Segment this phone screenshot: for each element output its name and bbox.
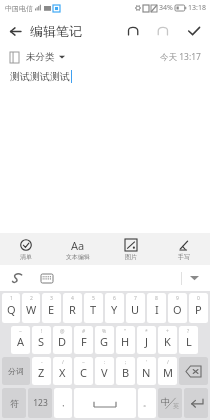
button[interactable]: 未分类 — [10, 51, 65, 63]
button[interactable]: 图片 — [104, 233, 157, 265]
button[interactable]: 分词 — [2, 357, 30, 385]
button[interactable]: 6 — [105, 293, 124, 323]
button[interactable]: 3 — [42, 293, 61, 323]
staticText: S — [38, 334, 45, 349]
staticText: 。 — [143, 398, 151, 408]
button[interactable]: 清单 — [0, 233, 52, 265]
staticText: Q — [7, 302, 16, 317]
button[interactable]: Switch language — [158, 388, 182, 418]
button[interactable]: Redo — [148, 16, 178, 46]
staticText: 1 — [10, 295, 13, 302]
staticText: % — [102, 328, 107, 335]
button[interactable]: Enter — [184, 388, 208, 418]
staticText: + — [166, 328, 169, 335]
button[interactable]: 4 — [63, 293, 82, 323]
button[interactable]: + — [158, 326, 177, 354]
staticText: 编辑笔记 — [30, 23, 82, 39]
button[interactable]: 123 — [28, 388, 52, 418]
staticText: 9 — [176, 295, 179, 302]
button[interactable]: ; — [116, 357, 135, 385]
button[interactable]: / — [158, 357, 177, 385]
staticText: U — [131, 302, 140, 317]
staticText: ? — [187, 328, 190, 335]
button[interactable]: / — [53, 357, 72, 385]
button[interactable]: # — [74, 326, 93, 354]
staticText: ; — [125, 359, 127, 366]
button[interactable]: Keyboard — [38, 269, 56, 287]
button[interactable]: Space — [74, 388, 136, 418]
button[interactable]: - — [32, 357, 51, 385]
staticText: @ — [60, 328, 65, 335]
staticText: X — [59, 365, 66, 380]
staticText: 7 — [134, 295, 137, 302]
staticText: 123 — [33, 397, 48, 409]
staticText: G — [100, 334, 109, 349]
staticText: D — [58, 334, 67, 349]
staticText: 中 — [161, 396, 170, 407]
staticText: " — [124, 328, 127, 335]
staticText: ， — [59, 398, 67, 408]
staticText: I — [155, 302, 159, 317]
button[interactable]: * — [137, 326, 156, 354]
staticText: 手写 — [178, 253, 190, 261]
staticText: Z — [38, 365, 45, 380]
button[interactable]: % — [95, 326, 114, 354]
staticText: W — [26, 302, 37, 317]
staticText: 4 — [71, 295, 74, 302]
staticText: B — [122, 365, 130, 380]
staticText: 13:18 — [188, 3, 206, 13]
staticText: 图片 — [125, 253, 137, 261]
staticText: V — [101, 365, 108, 380]
button[interactable]: Done — [178, 16, 210, 46]
button[interactable]: 5 — [84, 293, 103, 323]
staticText: 5 — [92, 295, 95, 302]
staticText: 8 — [155, 295, 158, 302]
button[interactable]: 8 — [147, 293, 166, 323]
staticText: 分词 — [8, 366, 24, 376]
button[interactable]: Backspace — [179, 357, 208, 385]
button[interactable]: Aa — [52, 233, 104, 265]
button[interactable]: ' — [137, 357, 156, 385]
button[interactable]: 9 — [168, 293, 187, 323]
staticText: 文本编辑 — [66, 253, 90, 261]
button[interactable]: 0 — [189, 293, 208, 323]
staticText: / — [167, 359, 169, 366]
staticText: A — [17, 334, 25, 349]
staticText: J — [145, 334, 149, 349]
staticText: : — [104, 359, 106, 366]
staticText: 3 — [50, 295, 53, 302]
button[interactable]: 7 — [126, 293, 145, 323]
staticText: O — [173, 302, 182, 317]
staticText: 6 — [113, 295, 116, 302]
staticText: F — [81, 334, 87, 349]
button[interactable]: ~ — [11, 326, 30, 354]
staticText: ~ — [82, 359, 85, 366]
staticText: K — [164, 334, 171, 349]
staticText: # — [82, 328, 86, 335]
button[interactable]: 符 — [2, 388, 26, 418]
button[interactable]: 1 — [2, 293, 20, 323]
staticText: / — [62, 359, 64, 366]
staticText: 中国电信 — [5, 4, 33, 13]
staticText: E — [48, 302, 55, 317]
staticText: C — [80, 365, 87, 380]
button[interactable]: Undo — [118, 16, 148, 46]
button[interactable]: ? — [179, 326, 198, 354]
staticText: N — [142, 365, 151, 380]
button[interactable]: Sogou — [8, 269, 26, 287]
staticText: 英 — [173, 402, 179, 410]
button[interactable]: 2 — [22, 293, 40, 323]
button[interactable]: @ — [53, 326, 72, 354]
button[interactable]: ! — [32, 326, 51, 354]
staticText: 0 — [197, 295, 200, 302]
button[interactable]: Back — [0, 16, 30, 46]
button[interactable]: 。 — [138, 388, 156, 418]
button[interactable]: 手写 — [157, 233, 210, 265]
button[interactable]: ~ — [74, 357, 93, 385]
button[interactable]: ， — [54, 388, 72, 418]
staticText: 测试测试测试 — [10, 70, 70, 83]
button[interactable]: " — [116, 326, 135, 354]
button[interactable]: : — [95, 357, 114, 385]
staticText: 2 — [30, 295, 33, 302]
button[interactable]: Collapse keyboard — [182, 266, 206, 290]
